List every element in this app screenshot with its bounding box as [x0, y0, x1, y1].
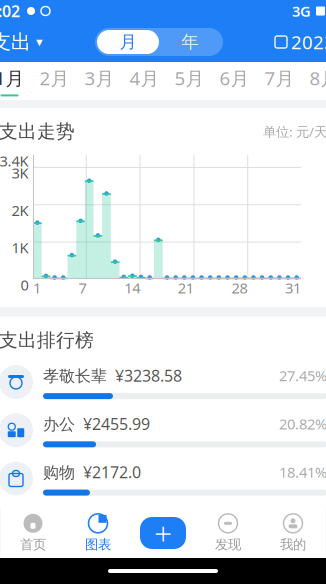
staticText: 我的	[280, 536, 306, 553]
staticText: 28	[231, 278, 247, 298]
staticText: 3G	[292, 1, 311, 21]
button[interactable]: 孝敬长辈 ¥3238.58	[0, 358, 326, 406]
button[interactable]: 8月	[302, 63, 326, 99]
button[interactable]: 1月	[0, 63, 32, 99]
staticText: 单位: 元/天	[263, 123, 326, 140]
button[interactable]: 汽车 ¥1654.58	[0, 503, 326, 551]
staticText: 1	[33, 278, 41, 298]
button[interactable]: 购物 ¥2172.0	[0, 454, 326, 503]
staticText: 7月	[264, 66, 294, 90]
staticText: 20.82%	[279, 414, 326, 433]
button[interactable]: 首页	[0, 508, 65, 558]
button[interactable]: 办公 ¥2455.99	[0, 406, 326, 454]
button[interactable]: 月	[97, 30, 159, 54]
staticText: 月	[119, 31, 136, 53]
staticText: 办公 ¥2455.99	[43, 413, 150, 434]
staticText: 2023	[291, 30, 326, 54]
staticText: 3.4K	[0, 151, 28, 171]
staticText: 年	[181, 31, 198, 53]
staticText: +	[154, 512, 172, 554]
staticText: 6月	[219, 66, 249, 90]
staticText: 7	[79, 278, 87, 298]
staticText: 9:02	[0, 0, 20, 22]
button[interactable]: 支出	[0, 26, 43, 58]
button[interactable]: 年	[159, 30, 221, 54]
button[interactable]: 我的	[260, 508, 325, 558]
staticText: 2K	[11, 200, 28, 220]
staticText: 4月	[129, 66, 159, 90]
staticText: 3K	[11, 163, 28, 183]
staticText: 21	[178, 278, 194, 298]
staticText: 支出	[0, 30, 31, 54]
button[interactable]: 5月	[167, 63, 212, 99]
staticText: ▾	[36, 34, 43, 49]
staticText: 发现	[215, 536, 241, 553]
staticText: 14.03%	[279, 510, 326, 530]
staticText: 31	[285, 278, 301, 298]
staticText: 购物 ¥2172.0	[43, 461, 141, 483]
staticText: 支出走势	[0, 120, 75, 143]
staticText: 图表	[85, 536, 111, 553]
button[interactable]: 3月	[77, 63, 122, 99]
button[interactable]: 4月	[122, 63, 167, 99]
staticText: 0	[20, 275, 28, 295]
staticText: 孝敬长辈 ¥3238.58	[43, 365, 182, 386]
staticText: 首页	[20, 536, 46, 553]
button[interactable]: 图表	[65, 508, 130, 558]
button[interactable]: 2023	[275, 26, 326, 58]
button[interactable]: 发现	[195, 508, 260, 558]
button[interactable]: Add	[130, 508, 195, 558]
staticText: 5月	[174, 66, 204, 90]
staticText: 8月	[309, 66, 326, 90]
staticText: 3月	[84, 66, 114, 90]
staticText: 1月	[0, 66, 24, 90]
staticText: 14	[124, 278, 140, 298]
staticText: 18.41%	[279, 462, 326, 482]
staticText: 27.45%	[279, 366, 326, 385]
button[interactable]: 7月	[257, 63, 302, 99]
button[interactable]: 2月	[32, 63, 77, 99]
staticText: 汽车 ¥1654.58	[43, 510, 150, 531]
staticText: 2月	[39, 66, 69, 90]
staticText: 1K	[11, 238, 28, 257]
button[interactable]: 6月	[212, 63, 257, 99]
staticText: 支出排行榜	[0, 329, 94, 352]
